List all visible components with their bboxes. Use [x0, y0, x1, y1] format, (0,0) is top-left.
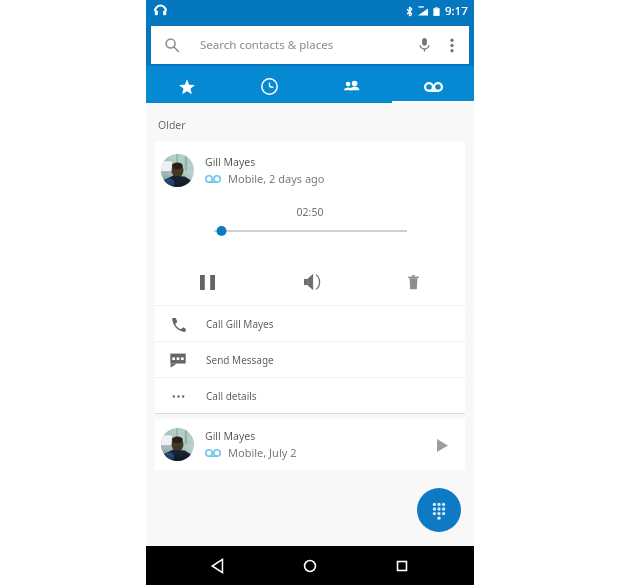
staticText: Gill Mayes: [205, 429, 256, 443]
button[interactable]: Pause: [155, 267, 259, 297]
button[interactable]: Voice search: [412, 30, 436, 60]
button[interactable]: Contacts: [310, 66, 392, 103]
button[interactable]: Speaker: [259, 267, 362, 297]
staticText: Older: [158, 118, 186, 132]
button[interactable]: Call details: [155, 378, 465, 413]
staticText: Call Gill Mayes: [206, 317, 274, 331]
button[interactable]: Call Gill Mayes: [155, 306, 465, 341]
staticText: Send Message: [206, 353, 274, 367]
button[interactable]: Send Message: [155, 342, 465, 377]
button[interactable]: Open dialpad: [417, 488, 461, 532]
button[interactable]: Recent apps: [386, 550, 418, 582]
staticText: Mobile, July 2: [228, 445, 297, 460]
button[interactable]: Gill Mayes: [155, 419, 465, 470]
staticText: Gill Mayes: [205, 155, 256, 169]
button[interactable]: Gill Mayes: [155, 142, 465, 198]
button[interactable]: Back: [202, 550, 234, 582]
staticText: Call details: [206, 389, 257, 403]
button[interactable]: Favorites: [146, 66, 228, 103]
button[interactable]: Play voicemail: [425, 428, 459, 462]
staticText: Mobile, 2 days ago: [228, 171, 325, 186]
staticText: 02:50: [155, 205, 465, 219]
button[interactable]: Recents: [228, 66, 310, 103]
button[interactable]: Delete: [362, 267, 465, 297]
staticText: Search contacts & places: [200, 37, 334, 53]
button[interactable]: More options: [442, 30, 462, 60]
button[interactable]: Search contacts & places: [151, 26, 469, 64]
button[interactable]: Home: [294, 550, 326, 582]
staticText: 9:17: [445, 3, 468, 19]
button[interactable]: Voicemail: [392, 66, 474, 103]
